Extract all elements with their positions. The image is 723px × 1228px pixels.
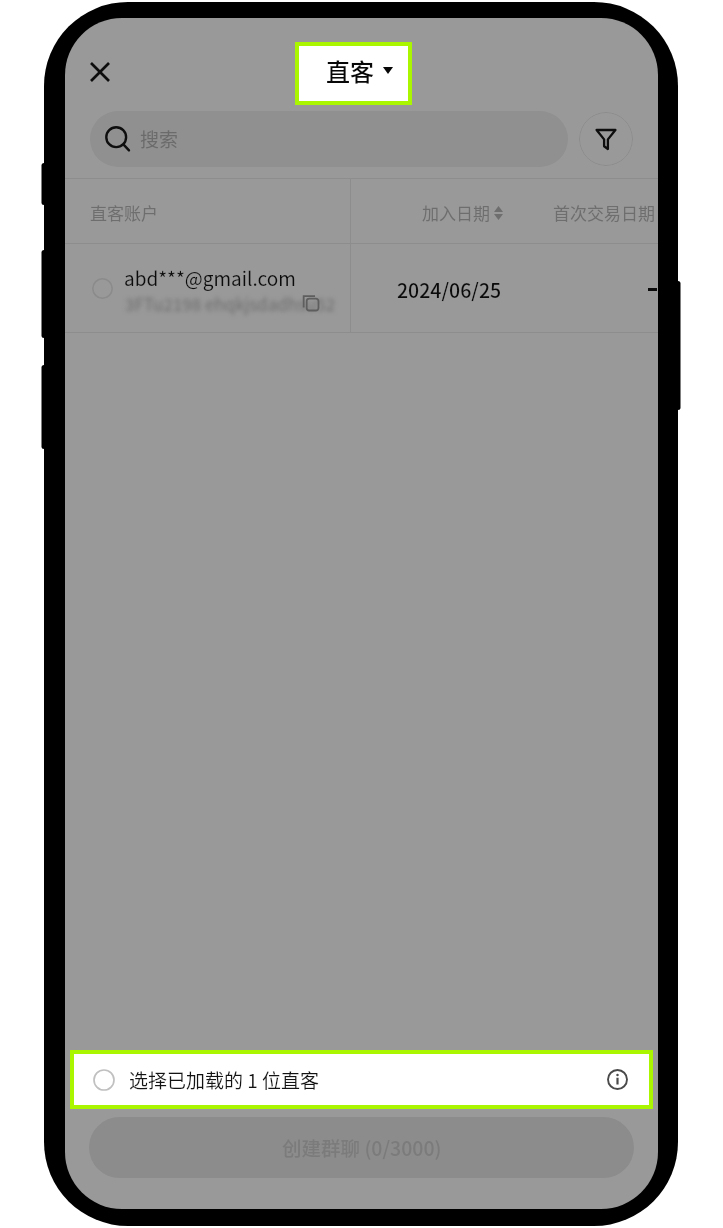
- staticText: abd***@gmail.com: [124, 264, 296, 292]
- staticText: 直客账户: [90, 200, 158, 225]
- button[interactable]: 搜索: [90, 111, 568, 167]
- button[interactable]: abd***@gmail.com: [65, 244, 658, 333]
- staticText: 创建群聊 (0/3000): [282, 1133, 442, 1161]
- staticText: 选择已加载的 1 位直客: [129, 1066, 320, 1094]
- button[interactable]: Close: [76, 48, 124, 96]
- button[interactable]: 直客: [299, 46, 408, 101]
- staticText: 直客: [326, 53, 374, 88]
- staticText: 2024/06/25: [397, 275, 502, 303]
- staticText: 3FTu2198 ehqkjsdadhsu52: [125, 291, 336, 316]
- button[interactable]: 创建群聊 (0/3000): [89, 1117, 634, 1178]
- staticText: 首次交易日期: [553, 200, 655, 225]
- button[interactable]: 选择已加载的 1 位直客: [74, 1054, 649, 1105]
- button[interactable]: Filter: [579, 112, 633, 166]
- staticText: 搜索: [140, 125, 179, 153]
- staticText: 加入日期: [422, 200, 490, 225]
